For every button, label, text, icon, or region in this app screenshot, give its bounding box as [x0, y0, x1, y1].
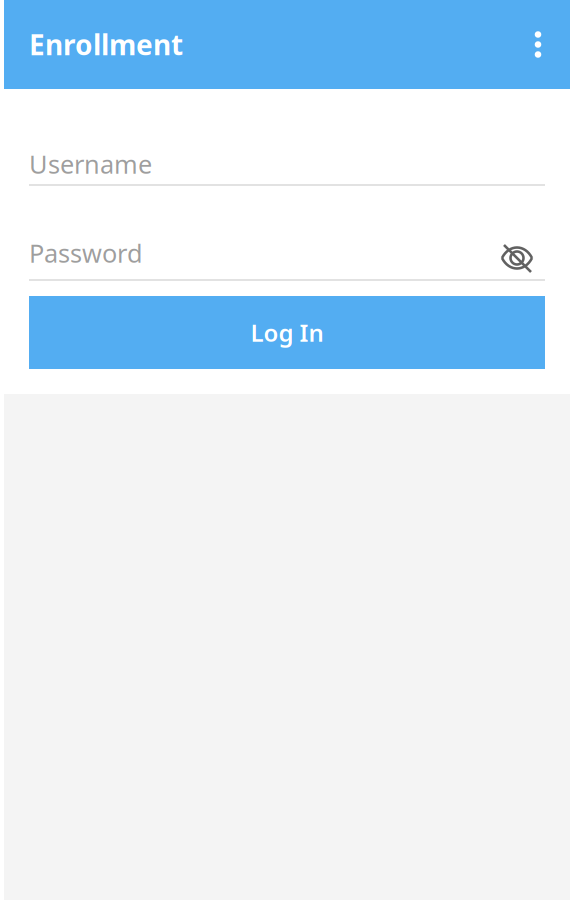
button[interactable]: Hide password: [498, 240, 536, 276]
staticText: Log In: [250, 317, 323, 348]
button[interactable]: Username: [29, 144, 545, 184]
staticText: Username: [29, 147, 152, 181]
button[interactable]: Password: [29, 227, 545, 279]
button[interactable]: Log In: [29, 296, 545, 369]
button[interactable]: More options: [520, 22, 556, 66]
staticText: Enrollment: [29, 26, 183, 63]
staticText: Password: [29, 236, 143, 270]
